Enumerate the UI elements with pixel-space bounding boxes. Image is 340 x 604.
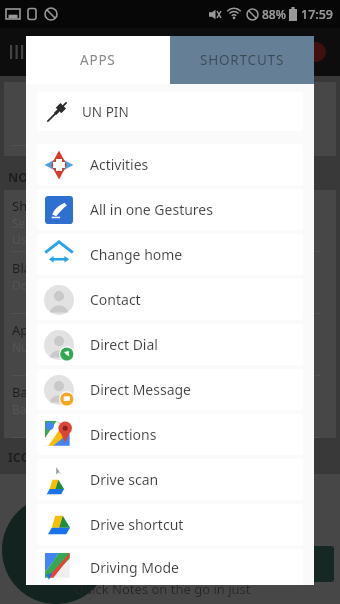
staticText: SHORTCUTS <box>200 51 285 69</box>
staticText: UN PIN <box>82 103 129 121</box>
staticText: APPS <box>80 51 116 69</box>
staticText: DIESEL <box>142 41 199 64</box>
button[interactable]: APPS <box>26 36 170 84</box>
staticText: Ba <box>12 383 28 401</box>
staticText: ICON <box>8 449 41 466</box>
staticText: Direct Message <box>90 380 192 399</box>
other: Un pin <box>46 101 68 123</box>
staticText: Contact <box>90 290 141 309</box>
staticText: Activities <box>90 155 149 174</box>
button[interactable]: Un pin <box>37 92 303 131</box>
staticText: Drive scan <box>90 470 159 489</box>
staticText: Sh <box>12 197 28 215</box>
button[interactable]: Drive scan <box>37 459 303 500</box>
staticText: Nu <box>12 339 29 355</box>
staticText: Change home <box>90 245 183 264</box>
button[interactable]: All in one Gestures <box>37 189 303 230</box>
staticText: Direct Dial <box>90 335 158 354</box>
staticText: Se <box>12 215 26 231</box>
button[interactable]: Direct Dial <box>37 324 303 365</box>
button[interactable]: SHORTCUTS <box>170 36 314 84</box>
staticText: Directions <box>90 425 157 444</box>
button[interactable]: Contact <box>37 279 303 320</box>
staticText: Us <box>12 231 27 247</box>
staticText: Quick Notes on the go in just <box>74 580 251 598</box>
staticText: Drive shortcut <box>90 515 184 534</box>
staticText: All in one Gestures <box>90 200 213 219</box>
staticText: Do <box>12 277 29 293</box>
staticText: 17:59 <box>301 6 334 23</box>
button[interactable]: Change home <box>37 234 303 275</box>
button[interactable]: Directions <box>37 414 303 455</box>
staticText: Driving Mode <box>90 558 179 577</box>
staticText: Ba <box>12 401 27 417</box>
button[interactable]: Direct Message <box>37 369 303 410</box>
staticText: Bla <box>12 259 32 277</box>
button[interactable]: Driving Mode <box>37 549 303 585</box>
staticText: 88% <box>262 6 286 22</box>
staticText: NOTIFICATION <box>8 169 100 186</box>
button[interactable]: Activities <box>37 144 303 185</box>
button[interactable]: Drive shortcut <box>37 504 303 545</box>
staticText: Ap <box>12 321 29 339</box>
